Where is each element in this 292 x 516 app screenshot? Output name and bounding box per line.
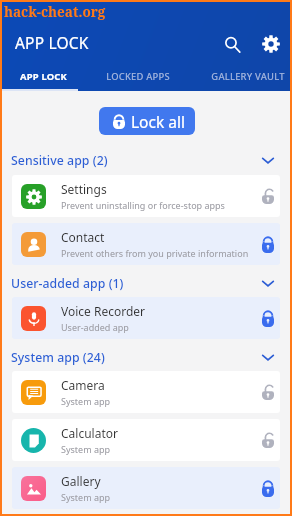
staticText: Gallery xyxy=(61,473,101,489)
staticText: Calculator xyxy=(61,425,118,441)
staticText: APP LOCK xyxy=(20,70,67,83)
button[interactable]: Voice Recorder xyxy=(12,297,280,339)
staticText: Contact xyxy=(61,229,105,245)
staticText: hack-cheat.org xyxy=(4,3,106,21)
button[interactable]: Gallery xyxy=(12,467,280,509)
button[interactable]: System app (24) xyxy=(2,339,290,371)
button[interactable]: Lock Camera xyxy=(260,379,276,405)
button[interactable]: Unlock Voice Recorder xyxy=(260,305,276,331)
button[interactable]: Lock Calculator xyxy=(260,427,276,453)
staticText: System app (24) xyxy=(11,349,105,366)
staticText: User-added app xyxy=(61,321,129,333)
button[interactable]: User-added app (1) xyxy=(2,265,290,297)
button[interactable]: Settings xyxy=(12,175,280,217)
staticText: Voice Recorder xyxy=(61,303,146,319)
button[interactable]: Sensitive app (2) xyxy=(2,141,290,175)
button[interactable]: Unlock Gallery xyxy=(260,475,276,501)
staticText: System app xyxy=(61,443,111,455)
button[interactable]: Unlock Contact xyxy=(260,231,276,257)
staticText: Prevent uninstalling or force-stop apps xyxy=(61,199,225,211)
button[interactable]: Lock all xyxy=(99,107,195,135)
button[interactable]: APP LOCK xyxy=(0,61,88,91)
staticText: System app xyxy=(61,395,111,407)
button[interactable]: Contact xyxy=(12,223,280,265)
staticText: Settings xyxy=(61,181,107,197)
button[interactable]: Camera xyxy=(12,371,280,413)
staticText: Lock all xyxy=(131,111,185,132)
staticText: System app xyxy=(61,491,111,503)
button[interactable]: Lock Settings xyxy=(260,183,276,209)
staticText: Prevent others from you private informat… xyxy=(61,247,249,259)
button[interactable]: Calculator xyxy=(12,419,280,461)
staticText: APP LOCK xyxy=(15,32,89,53)
staticText: Sensitive app (2) xyxy=(11,152,108,169)
button[interactable]: LOCKED APPS xyxy=(93,61,183,91)
staticText: GALLERY VAULT xyxy=(211,70,285,83)
staticText: Camera xyxy=(61,377,105,393)
button[interactable]: Settings xyxy=(257,30,285,58)
button[interactable]: GALLERY VAULT xyxy=(203,61,292,91)
staticText: User-added app (1) xyxy=(11,275,124,292)
button[interactable]: Search xyxy=(218,30,246,58)
staticText: LOCKED APPS xyxy=(106,70,170,83)
